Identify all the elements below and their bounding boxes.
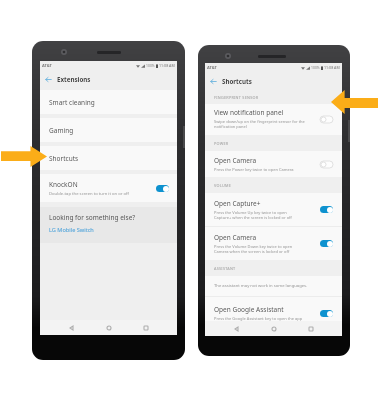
staticText: VOLUME	[214, 183, 231, 188]
staticText: Shortcuts	[49, 154, 79, 163]
button[interactable]: Home	[103, 322, 114, 333]
staticText: The assistant may not work in some langu…	[214, 283, 308, 289]
staticText: Open Capture+	[214, 199, 261, 208]
button[interactable]: View notification panel	[205, 104, 342, 135]
staticText: Camera when the screen is locked or off	[214, 249, 290, 254]
staticText: 100%	[146, 63, 155, 68]
staticText: 11:08 AM	[159, 63, 175, 68]
staticText: FINGERPRINT SENSOR	[214, 95, 259, 100]
staticText: Open Google Assistant	[214, 305, 284, 314]
button[interactable]: Smart cleaning	[40, 90, 177, 114]
button[interactable]: Home	[268, 323, 279, 334]
staticText: Press the Google Assistant key to open t…	[214, 316, 303, 321]
staticText: KnockON	[49, 180, 78, 189]
button[interactable]: Back	[231, 323, 242, 334]
staticText: POWER	[214, 141, 229, 146]
button[interactable]: Switch on	[156, 185, 169, 192]
staticText: 11:08 AM	[324, 65, 340, 70]
staticText: Open Camera	[214, 156, 257, 165]
button[interactable]: Switch on	[320, 240, 333, 247]
staticText: AT&T	[207, 65, 217, 70]
staticText: notification panel	[214, 124, 247, 129]
button[interactable]: Open Camera	[205, 151, 342, 177]
staticText: Capture+ when the screen is locked or of…	[214, 215, 292, 220]
staticText: AT&T	[42, 63, 52, 68]
staticText: Smart cleaning	[49, 98, 95, 107]
staticText: Press the Power key twice to open Camera	[214, 167, 294, 172]
button[interactable]: Open Capture+	[205, 193, 342, 226]
button[interactable]: Open Camera	[205, 227, 342, 260]
staticText: Press the Volume Down key twice to open	[214, 244, 293, 249]
staticText: Gaming	[49, 126, 74, 135]
staticText: Shortcuts	[222, 77, 252, 85]
button[interactable]: Switch off	[320, 161, 333, 168]
button[interactable]: Back	[66, 322, 77, 333]
staticText: Open Camera	[214, 233, 257, 242]
button[interactable]: Recents	[305, 323, 316, 334]
staticText: Swipe down/up on the fingerprint sensor …	[214, 119, 305, 124]
button[interactable]: Recents	[140, 322, 151, 333]
button[interactable]: Gaming	[40, 118, 177, 142]
staticText: ASSISTANT	[214, 266, 236, 271]
button[interactable]: Switch on	[320, 310, 333, 317]
staticText: Extensions	[57, 75, 91, 83]
button[interactable]: Back	[210, 78, 217, 85]
button[interactable]: LG Mobile Switch	[49, 226, 94, 234]
button[interactable]: KnockON	[40, 174, 177, 202]
staticText: Double-tap the screen to turn it on or o…	[49, 191, 129, 197]
button[interactable]: Open Google Assistant	[205, 297, 342, 329]
staticText: View notification panel	[214, 108, 284, 117]
staticText: Looking for something else?	[49, 213, 136, 222]
button[interactable]: Switch off	[320, 116, 333, 123]
button[interactable]: Switch on	[320, 206, 333, 213]
button[interactable]: Back	[45, 76, 52, 83]
staticText: Press the Volume Up key twice to open	[214, 210, 287, 215]
staticText: 100%	[311, 65, 320, 70]
button[interactable]: Shortcuts	[40, 146, 177, 170]
